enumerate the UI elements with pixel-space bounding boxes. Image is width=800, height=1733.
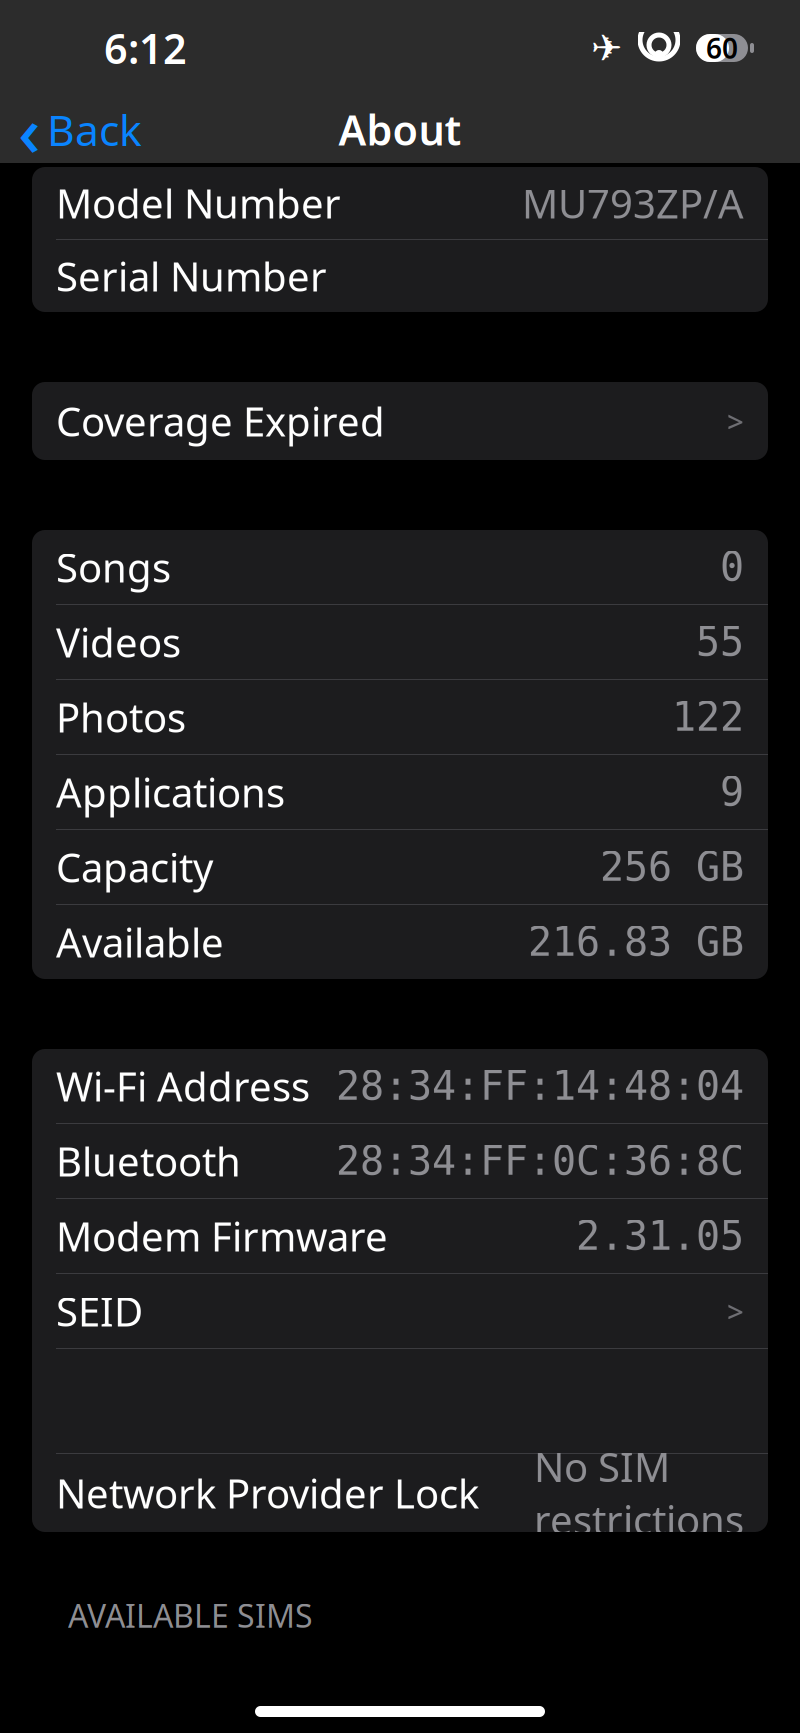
staticText: > [727, 1291, 744, 1330]
staticText: Wi-Fi Address [56, 1059, 310, 1112]
staticText: Serial Number [56, 249, 327, 302]
staticText: Photos [56, 690, 186, 743]
staticText: Modem Firmware [56, 1209, 388, 1262]
staticText: Capacity [56, 840, 213, 893]
staticText: 216.83 GB [528, 919, 744, 965]
staticText: Model Number [56, 176, 341, 229]
button[interactable]: Videos [32, 605, 768, 679]
staticText: ✈ [591, 27, 622, 69]
staticText: Applications [56, 765, 285, 818]
staticText: 0 [720, 544, 744, 590]
staticText: About [338, 102, 461, 157]
button[interactable]: Wi-Fi Address [32, 1049, 768, 1123]
button[interactable]: Songs [32, 530, 768, 604]
staticText: 122 [672, 694, 744, 740]
staticText: Network Provider Lock [56, 1466, 479, 1519]
staticText: 6:12 [104, 21, 187, 75]
staticText: > [727, 401, 744, 440]
button[interactable]: SEID [32, 1274, 768, 1348]
staticText: Back [47, 101, 142, 158]
staticText: Songs [56, 540, 171, 593]
staticText: MU793ZP/A [522, 176, 744, 229]
staticText: 55 [696, 619, 744, 665]
staticText: 28:34:FF:0C:36:8C [336, 1138, 744, 1184]
button[interactable]: Serial Number [32, 240, 768, 312]
staticText: 256 GB [600, 844, 744, 890]
button[interactable]: Capacity [32, 830, 768, 904]
button[interactable]: Photos [32, 680, 768, 754]
button[interactable]: Network Provider Lock [32, 1454, 768, 1532]
button[interactable]: Applications [32, 755, 768, 829]
staticText: ‹ [18, 83, 41, 176]
button[interactable]: Modem Firmware [32, 1199, 768, 1273]
button[interactable]: Available [32, 905, 768, 979]
staticText: Videos [56, 615, 181, 668]
staticText: SEID [56, 1284, 143, 1337]
staticText: Bluetooth [56, 1134, 241, 1187]
staticText: No SIM restrictions [534, 1440, 744, 1546]
staticText: Available [56, 915, 224, 968]
staticText: Coverage Expired [56, 394, 385, 447]
button[interactable]: Bluetooth [32, 1124, 768, 1198]
staticText: 60 [706, 29, 738, 67]
button[interactable]: Model Number [32, 167, 768, 239]
button[interactable]: ‹ [0, 96, 160, 162]
button[interactable]: Coverage Expired [32, 382, 768, 460]
staticText: AVAILABLE SIMS [68, 1594, 313, 1636]
staticText: 28:34:FF:14:48:04 [336, 1063, 744, 1109]
staticText: 9 [720, 769, 744, 815]
staticText: 2.31.05 [576, 1213, 744, 1259]
